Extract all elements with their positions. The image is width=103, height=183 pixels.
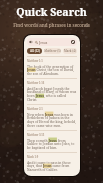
staticText: Find words and phrases in seconds — [13, 22, 90, 28]
staticText: Matthew (5) — [44, 49, 61, 53]
staticText: And it came to pass in those days, that … — [27, 160, 77, 172]
staticText: Matthew 1:1 — [27, 59, 43, 63]
button[interactable]: Matthew 1:1 — [24, 57, 80, 78]
button[interactable]: Matthew 1:16 — [24, 79, 80, 104]
staticText: And Jacob begat Joseph the husband of Ma… — [27, 86, 77, 102]
staticText: All (12) — [30, 49, 40, 53]
button[interactable]: Matthew 3:13 — [24, 131, 80, 152]
staticText: Now when Jesus was born in Bethlehem of … — [27, 112, 77, 128]
button[interactable]: Mark (4) — [63, 48, 77, 54]
staticText: Jesus — [39, 40, 48, 45]
button[interactable]: Back — [29, 40, 33, 44]
button[interactable]: Filter settings — [71, 40, 75, 44]
staticText: Quick Search — [16, 5, 87, 19]
staticText: Mark (4) — [64, 49, 76, 53]
staticText: The book of the generation of Jesus Chri… — [27, 64, 77, 76]
staticText: Then cometh Jesus from Galilee to Jordan… — [27, 138, 77, 150]
button[interactable]: Matthew 2:1 — [24, 105, 80, 130]
button[interactable]: All (12) — [27, 48, 42, 54]
staticText: Matthew 1:16 — [27, 81, 45, 85]
button[interactable]: Matthew (5) — [44, 48, 61, 54]
staticText: Mark 1:9 — [27, 155, 39, 159]
staticText: Matthew 2:1 — [27, 107, 43, 111]
button[interactable]: Back — [27, 38, 77, 46]
button[interactable]: Mark 1:9 — [24, 153, 80, 174]
staticText: Matthew 3:13 — [27, 133, 45, 137]
